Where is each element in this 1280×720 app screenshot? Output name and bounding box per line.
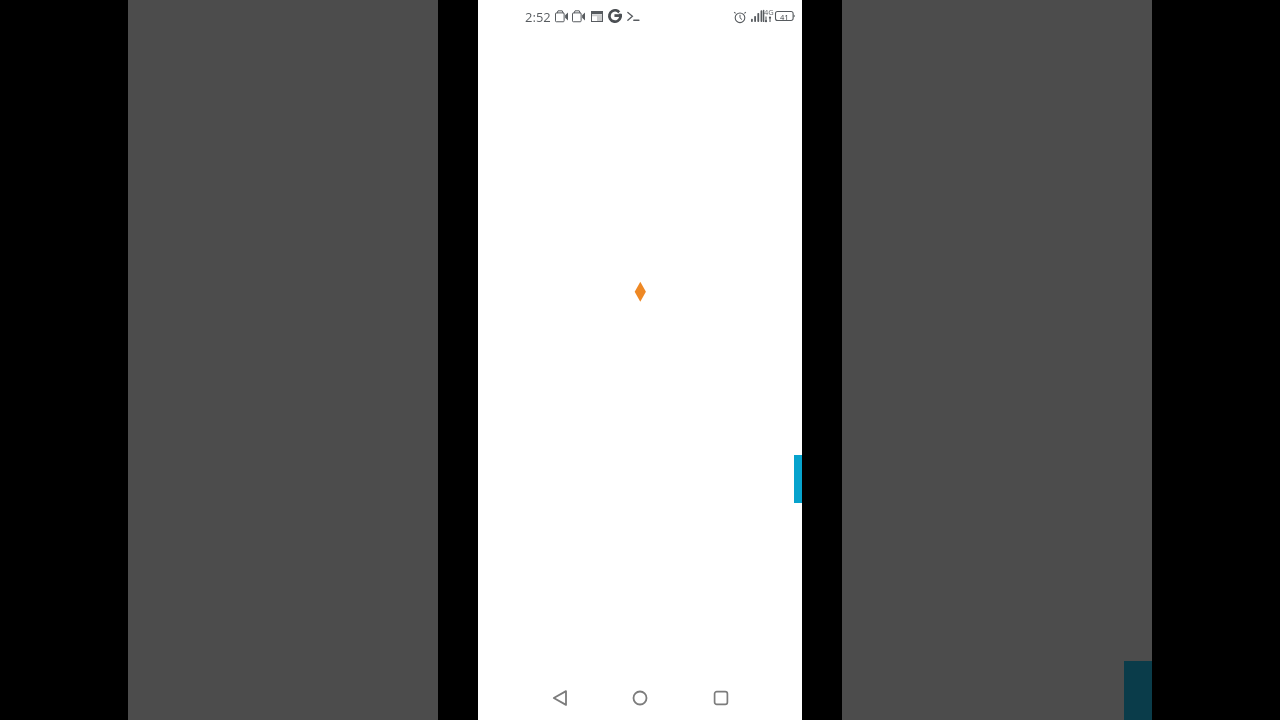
button[interactable]: Home bbox=[616, 674, 664, 720]
staticText: 41 bbox=[780, 12, 789, 22]
staticText: 4G bbox=[764, 7, 774, 17]
button[interactable]: Back bbox=[536, 674, 584, 720]
staticText: 2:52 bbox=[525, 8, 551, 26]
button[interactable]: Recent apps bbox=[697, 674, 745, 720]
